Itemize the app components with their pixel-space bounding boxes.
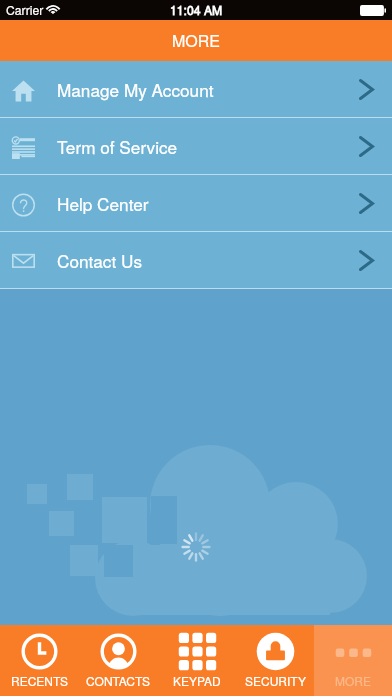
staticText: Manage My Account [57, 77, 214, 102]
staticText: RECENTS [11, 672, 69, 689]
button[interactable]: RECENTS [0, 625, 79, 696]
staticText: CONTACTS [86, 672, 151, 689]
button[interactable]: MORE [314, 625, 392, 696]
staticText: Contact Us [57, 248, 143, 273]
staticText: Term of Service [57, 134, 178, 159]
staticText: SECURITY [245, 672, 306, 689]
staticText: MORE [335, 672, 372, 689]
staticText: 11:04 AM [170, 1, 223, 18]
button[interactable]: KEYPAD [158, 625, 236, 696]
button[interactable]: Term of Service [0, 118, 392, 174]
button[interactable]: Manage My Account [0, 61, 392, 117]
staticText: Help Center [57, 191, 149, 216]
staticText: Carrier [6, 1, 44, 18]
staticText: MORE [172, 29, 221, 52]
button[interactable]: CONTACTS [79, 625, 158, 696]
staticText: KEYPAD [173, 672, 221, 689]
button[interactable]: SECURITY [236, 625, 314, 696]
button[interactable]: Contact Us [0, 232, 392, 288]
button[interactable]: Help Center [0, 175, 392, 231]
